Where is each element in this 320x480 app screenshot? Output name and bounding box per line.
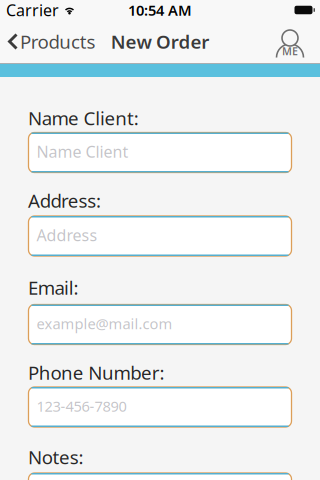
staticText: ME	[282, 44, 298, 58]
staticText: Name Client	[36, 141, 128, 162]
staticText: Products	[20, 29, 96, 54]
staticText: New Order	[111, 29, 209, 54]
staticText: Notes:	[28, 445, 83, 469]
button[interactable]: Notes	[28, 473, 291, 480]
button[interactable]: Address	[28, 216, 291, 256]
staticText: Carrier	[6, 0, 59, 21]
button[interactable]: Products	[0, 29, 96, 54]
staticText: example@mail.com	[36, 314, 172, 333]
button[interactable]: Name Client	[28, 132, 291, 172]
staticText: Email:	[28, 275, 78, 300]
staticText: Address:	[28, 188, 101, 213]
staticText: Address	[36, 224, 97, 246]
staticText: 123-456-7890	[36, 396, 126, 416]
button[interactable]: example@mail.com	[28, 304, 291, 344]
staticText: Name Client:	[28, 106, 139, 130]
button[interactable]: My Profile	[273, 23, 307, 59]
staticText: 10:54 AM	[128, 0, 192, 20]
staticText: Phone Number:	[28, 360, 164, 385]
button[interactable]: 123-456-7890	[28, 387, 291, 427]
